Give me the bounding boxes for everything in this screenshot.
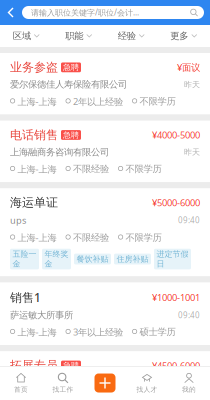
staticText: ¥4000-5000 — [152, 129, 200, 141]
button[interactable]: 更多 — [157, 24, 210, 48]
button[interactable]: 我的 — [168, 367, 210, 399]
staticText: 业务参盗 — [10, 60, 58, 75]
staticText: 找工作 — [52, 385, 73, 394]
staticText: 我的 — [182, 385, 196, 394]
staticText: ¥1000-1001 — [152, 291, 200, 303]
staticText: 硕士学历 — [139, 326, 175, 338]
staticText: 餐饮补贴 — [76, 254, 108, 264]
staticText: ups — [10, 214, 26, 226]
button[interactable]: 经验 — [105, 24, 157, 48]
button[interactable]: 拓展专员 — [0, 351, 210, 400]
button[interactable]: 职能 — [52, 24, 105, 48]
staticText: 请输入职位关键字/职位/会计... — [31, 7, 139, 18]
staticText: 进定节假日 — [156, 249, 188, 269]
staticText: 上海-上海 — [17, 95, 56, 108]
staticText: 拓展专员 — [10, 358, 58, 373]
staticText: 昨天 — [184, 80, 200, 89]
staticText: 经验 — [118, 30, 136, 42]
staticText: 不限经验 — [73, 163, 109, 175]
staticText: 萨运敏大所事所 — [10, 309, 73, 321]
staticText: 昨天 — [184, 147, 200, 157]
staticText: 09:32 — [178, 377, 200, 388]
staticText: ¥5000-6000 — [152, 196, 200, 209]
staticText: 住房补贴 — [116, 254, 148, 264]
staticText: 09:40 — [178, 310, 200, 320]
staticText: 区域 — [13, 30, 31, 42]
staticText: 销售1 — [10, 289, 41, 305]
staticText: 09:40 — [178, 215, 200, 225]
button[interactable]: 业务参盗 — [0, 53, 210, 115]
staticText: 上海-上海 — [17, 231, 56, 244]
button[interactable]: 找工作 — [42, 367, 84, 399]
staticText: 急聘 — [63, 361, 79, 370]
button[interactable]: 销售1 — [0, 282, 210, 345]
staticText: 厦门联合物流有限公司上海分公司 — [10, 377, 145, 388]
staticText: 五险一金 — [12, 249, 36, 269]
button[interactable]: Post — [84, 373, 126, 392]
button[interactable]: 首页 — [0, 367, 42, 399]
button[interactable]: 区域 — [0, 24, 52, 48]
button[interactable]: 电话销售 — [0, 121, 210, 182]
staticText: 海运单证 — [10, 195, 58, 210]
staticText: 3年以上经验 — [73, 326, 123, 338]
staticText: 上海融商务咨询有限公司 — [10, 146, 109, 158]
staticText: 找人才 — [136, 385, 157, 394]
staticText: 不限学历 — [139, 96, 175, 107]
staticText: 急聘 — [63, 62, 79, 72]
staticText: 更多 — [170, 30, 188, 42]
staticText: 上海-上海 — [17, 163, 56, 175]
staticText: 不限学历 — [125, 163, 161, 175]
staticText: 2年以上经验 — [73, 95, 123, 108]
button[interactable]: 海运单证 — [0, 188, 210, 276]
staticText: 不限经验 — [73, 232, 109, 243]
staticText: ¥4500-6000 — [152, 359, 200, 372]
staticText: 上海-上海 — [17, 326, 56, 338]
button[interactable]: 找人才 — [126, 367, 168, 399]
staticText: 不限学历 — [125, 232, 161, 243]
button[interactable]: Back — [0, 1, 22, 24]
staticText: 电话销售 — [10, 128, 58, 142]
staticText: 职能 — [65, 30, 83, 42]
staticText: 爱尔保德佳人寿保险有限公司 — [10, 79, 127, 90]
staticText: ¥面议 — [177, 61, 200, 74]
staticText: 年终奖金 — [44, 249, 68, 269]
staticText: 首页 — [14, 385, 28, 394]
staticText: 急聘 — [63, 130, 79, 140]
button[interactable]: 请输入职位关键字/职位/会计... — [22, 6, 204, 19]
